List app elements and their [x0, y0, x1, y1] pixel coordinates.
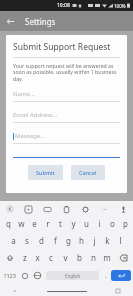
staticText: ?123 — [4, 272, 16, 279]
staticText: z — [23, 252, 27, 263]
button[interactable]: Voice typing — [117, 203, 129, 215]
staticText: Submit — [36, 169, 55, 176]
button[interactable]: x — [31, 252, 44, 263]
button[interactable]: o — [106, 218, 119, 229]
staticText: 100% — [114, 3, 126, 9]
button[interactable]: g — [62, 235, 75, 246]
staticText: Settings — [25, 16, 56, 27]
staticText: h — [79, 235, 84, 246]
button[interactable]: Home — [47, 286, 87, 296]
button[interactable]: q — [1, 218, 15, 229]
staticText: English — [65, 273, 81, 279]
button[interactable]: j — [88, 235, 101, 246]
staticText: p — [123, 218, 128, 229]
button[interactable]: ?123 — [2, 269, 18, 282]
staticText: s — [25, 235, 29, 246]
staticText: a — [11, 235, 16, 246]
staticText: i — [98, 218, 101, 229]
button[interactable]: Name... — [13, 90, 120, 102]
staticText: k — [105, 235, 110, 246]
button[interactable]: u — [80, 218, 93, 229]
button[interactable]: Back — [10, 286, 20, 296]
button[interactable]: f — [48, 235, 62, 246]
button[interactable]: Email Address... — [13, 111, 120, 123]
staticText: c — [49, 252, 53, 263]
button[interactable]: Language — [31, 269, 44, 282]
button[interactable]: GIF — [41, 203, 53, 215]
staticText: l — [119, 235, 122, 246]
staticText: t — [59, 218, 62, 229]
button[interactable]: n — [86, 252, 100, 263]
button[interactable]: Previous — [3, 202, 16, 215]
button[interactable]: Period — [101, 269, 111, 282]
button[interactable]: Message... — [13, 132, 120, 144]
button[interactable]: s — [20, 235, 34, 246]
button[interactable]: More — [98, 203, 110, 215]
staticText: y — [71, 218, 76, 229]
button[interactable]: d — [34, 235, 48, 246]
button[interactable]: Backspace — [114, 252, 132, 263]
button[interactable]: a — [6, 235, 20, 246]
button[interactable]: w — [15, 218, 28, 229]
staticText: f — [54, 235, 57, 246]
staticText: Email Address... — [13, 111, 58, 119]
staticText: . — [105, 271, 107, 281]
button[interactable]: Clipboard — [60, 203, 72, 215]
button[interactable]: m — [100, 252, 114, 263]
button[interactable]: Shift — [1, 252, 18, 263]
staticText: u — [84, 218, 89, 229]
staticText: x — [35, 252, 40, 263]
button[interactable]: r — [41, 218, 54, 229]
button[interactable]: Emoji — [18, 269, 31, 282]
button[interactable]: English — [46, 271, 99, 280]
staticText: n — [91, 252, 96, 263]
staticText: w — [18, 218, 25, 229]
button[interactable]: Recents — [113, 286, 123, 296]
staticText: e — [32, 218, 37, 229]
button[interactable]: y — [67, 218, 80, 229]
button[interactable]: Cancel — [71, 165, 105, 180]
staticText: q — [6, 218, 11, 229]
button[interactable]: h — [75, 235, 88, 246]
button[interactable]: Settings — [79, 203, 91, 215]
button[interactable]: Sticker — [22, 203, 34, 215]
staticText: v — [63, 252, 68, 263]
staticText: Submit Support Request — [13, 41, 111, 53]
staticText: g — [66, 235, 71, 246]
button[interactable]: Enter — [111, 270, 131, 281]
button[interactable]: t — [54, 218, 67, 229]
staticText: j — [93, 235, 96, 246]
staticText: Your support request will be answered as… — [13, 62, 120, 83]
staticText: b — [77, 252, 82, 263]
button[interactable]: z — [18, 252, 31, 263]
button[interactable]: l — [114, 235, 127, 246]
button[interactable]: p — [119, 218, 132, 229]
staticText: Message... — [15, 132, 45, 140]
button[interactable]: Submit — [28, 165, 63, 180]
button[interactable]: Back — [0, 11, 20, 31]
staticText: Cancel — [79, 169, 97, 176]
button[interactable]: b — [72, 252, 86, 263]
staticText: 10:08 — [57, 2, 70, 9]
button[interactable]: i — [93, 218, 106, 229]
staticText: m — [103, 252, 111, 263]
staticText: Name... — [13, 90, 35, 98]
staticText: d — [39, 235, 44, 246]
button[interactable]: v — [58, 252, 72, 263]
button[interactable]: e — [28, 218, 41, 229]
button[interactable]: k — [101, 235, 114, 246]
staticText: r — [46, 218, 50, 229]
button[interactable]: c — [44, 252, 58, 263]
staticText: o — [110, 218, 115, 229]
